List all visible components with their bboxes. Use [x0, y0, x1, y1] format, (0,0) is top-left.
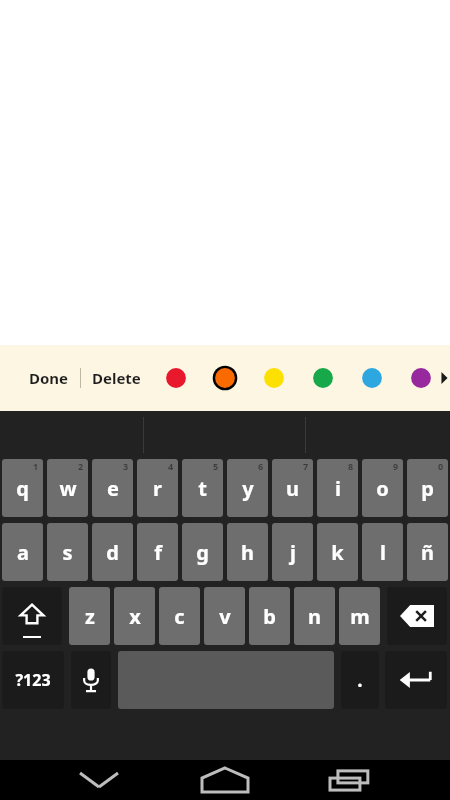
staticText: u — [286, 475, 299, 502]
staticText: ñ — [421, 539, 434, 566]
staticText: c — [174, 603, 185, 630]
button[interactable]: Delete — [89, 362, 144, 394]
staticText: q — [16, 475, 29, 502]
button[interactable]: p — [407, 459, 448, 517]
button[interactable]: Backspace — [387, 587, 447, 645]
staticText: z — [85, 603, 95, 630]
button[interactable]: . — [341, 651, 379, 709]
button[interactable]: d — [92, 523, 133, 581]
button[interactable]: m — [339, 587, 380, 645]
staticText: 7 — [303, 460, 309, 472]
staticText: i — [335, 475, 341, 502]
staticText: h — [241, 539, 254, 566]
staticText: 4 — [168, 460, 174, 472]
button[interactable]: Color swatch — [207, 360, 243, 396]
button[interactable]: More colors — [439, 361, 450, 395]
staticText: j — [290, 539, 296, 566]
staticText: 3 — [123, 460, 129, 472]
button[interactable]: Done — [26, 362, 72, 394]
button[interactable]: a — [2, 523, 43, 581]
button[interactable]: f — [137, 523, 178, 581]
staticText: k — [331, 539, 344, 566]
staticText: 8 — [348, 460, 354, 472]
staticText: 6 — [258, 460, 264, 472]
button[interactable]: ?123 — [2, 651, 64, 709]
button[interactable]: Voice input — [71, 651, 111, 709]
button[interactable]: Color swatch — [256, 360, 292, 396]
button[interactable]: Shift — [2, 587, 62, 645]
button[interactable]: n — [294, 587, 335, 645]
staticText: 2 — [78, 460, 84, 472]
button[interactable]: r — [137, 459, 178, 517]
button[interactable]: Color swatch — [158, 360, 194, 396]
staticText: s — [62, 539, 73, 566]
staticText: r — [153, 475, 162, 502]
staticText: v — [219, 603, 231, 630]
staticText: Done — [29, 368, 69, 388]
button[interactable]: q — [2, 459, 43, 517]
staticText: e — [107, 475, 119, 502]
button[interactable]: u — [272, 459, 313, 517]
staticText: 5 — [213, 460, 219, 472]
button[interactable]: Recent apps — [324, 760, 380, 800]
button[interactable]: o — [362, 459, 403, 517]
staticText: y — [242, 475, 254, 502]
staticText: f — [154, 539, 162, 566]
button[interactable]: l — [362, 523, 403, 581]
button[interactable]: z — [69, 587, 110, 645]
staticText: 9 — [393, 460, 399, 472]
button[interactable]: c — [159, 587, 200, 645]
staticText: g — [196, 539, 209, 566]
button[interactable]: h — [227, 523, 268, 581]
staticText: w — [59, 475, 77, 502]
button[interactable]: x — [114, 587, 155, 645]
staticText: n — [308, 603, 321, 630]
button[interactable]: Hide keyboard — [71, 760, 127, 800]
staticText: t — [198, 475, 207, 502]
staticText: x — [129, 603, 141, 630]
staticText: b — [263, 603, 276, 630]
button[interactable]: b — [249, 587, 290, 645]
button[interactable]: Color swatch — [354, 360, 390, 396]
staticText: a — [17, 539, 29, 566]
button[interactable]: Color swatch — [403, 360, 439, 396]
staticText: p — [421, 475, 434, 502]
staticText: . — [357, 667, 363, 693]
button[interactable]: w — [47, 459, 88, 517]
button[interactable]: k — [317, 523, 358, 581]
button[interactable]: j — [272, 523, 313, 581]
staticText: 0 — [438, 460, 444, 472]
button[interactable]: ñ — [407, 523, 448, 581]
button[interactable]: e — [92, 459, 133, 517]
button[interactable]: Color swatch — [305, 360, 341, 396]
staticText: d — [106, 539, 119, 566]
button[interactable]: y — [227, 459, 268, 517]
staticText: 1 — [33, 460, 39, 472]
button[interactable]: g — [182, 523, 223, 581]
button[interactable]: Home — [197, 760, 253, 800]
staticText: ?123 — [15, 669, 51, 691]
staticText: m — [350, 603, 370, 630]
staticText: o — [376, 475, 389, 502]
staticText: l — [380, 539, 386, 566]
button[interactable]: t — [182, 459, 223, 517]
button[interactable]: i — [317, 459, 358, 517]
staticText: Delete — [92, 368, 141, 388]
button[interactable]: Enter — [385, 651, 447, 709]
button[interactable]: v — [204, 587, 245, 645]
button[interactable]: s — [47, 523, 88, 581]
